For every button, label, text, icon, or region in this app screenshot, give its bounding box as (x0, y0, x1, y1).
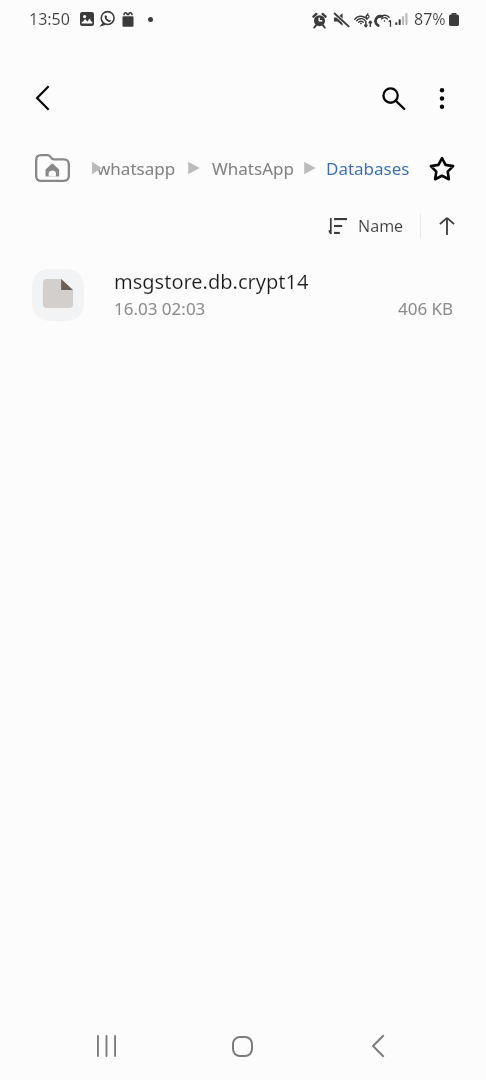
staticText: 87% (414, 8, 446, 30)
staticText: Databases (326, 157, 410, 180)
button[interactable]: msgstore.db.crypt14 (0, 259, 486, 331)
staticText: msgstore.db.crypt14 (114, 268, 309, 295)
button[interactable]: Recent apps (60, 1017, 152, 1075)
staticText: 16.03 02:03 (114, 297, 206, 320)
staticText: 13:50 (29, 8, 70, 30)
staticText: 406 KB (398, 297, 454, 320)
button[interactable]: whatsapp (97, 146, 187, 190)
button[interactable]: Back (332, 1017, 424, 1075)
button[interactable]: Navigate up (18, 74, 66, 122)
button[interactable]: WhatsApp (212, 146, 304, 190)
button[interactable]: Name (323, 204, 410, 248)
button[interactable]: Search (369, 74, 417, 122)
button[interactable]: More options (418, 74, 466, 122)
staticText: WhatsApp (212, 157, 294, 180)
button[interactable]: Internal storage root (28, 146, 77, 190)
staticText: whatsapp (97, 157, 176, 180)
button[interactable]: Databases (326, 146, 420, 190)
staticText: Name (358, 215, 404, 237)
button[interactable]: Home (196, 1017, 288, 1075)
button[interactable]: Add to favourites (420, 146, 464, 190)
button[interactable]: Sort order ascending (428, 207, 466, 245)
